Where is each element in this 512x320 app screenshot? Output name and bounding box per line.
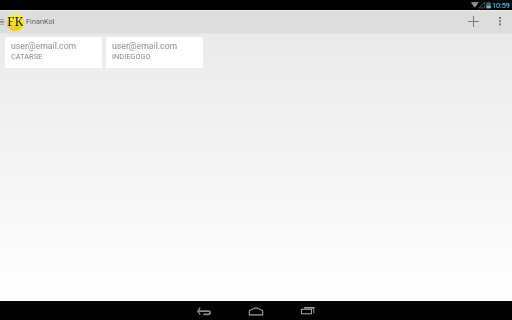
button[interactable]: Back [178, 301, 230, 320]
staticText: FinanKol [26, 17, 55, 26]
staticText: INDIEGOGO [112, 52, 151, 61]
button[interactable]: user@email.com [106, 37, 203, 68]
button[interactable]: user@email.com [5, 37, 102, 68]
button[interactable]: Add [460, 10, 487, 34]
staticText: user@email.com [11, 41, 77, 51]
staticText: CATARSE [11, 52, 43, 61]
button[interactable]: Recent apps [282, 301, 334, 320]
button[interactable]: Home [230, 301, 282, 320]
staticText: 10:59 [492, 1, 510, 9]
staticText: user@email.com [112, 41, 178, 51]
staticText: FK [7, 13, 24, 30]
button[interactable]: More options [487, 10, 512, 34]
button[interactable]: Open navigation drawer [0, 10, 6, 34]
